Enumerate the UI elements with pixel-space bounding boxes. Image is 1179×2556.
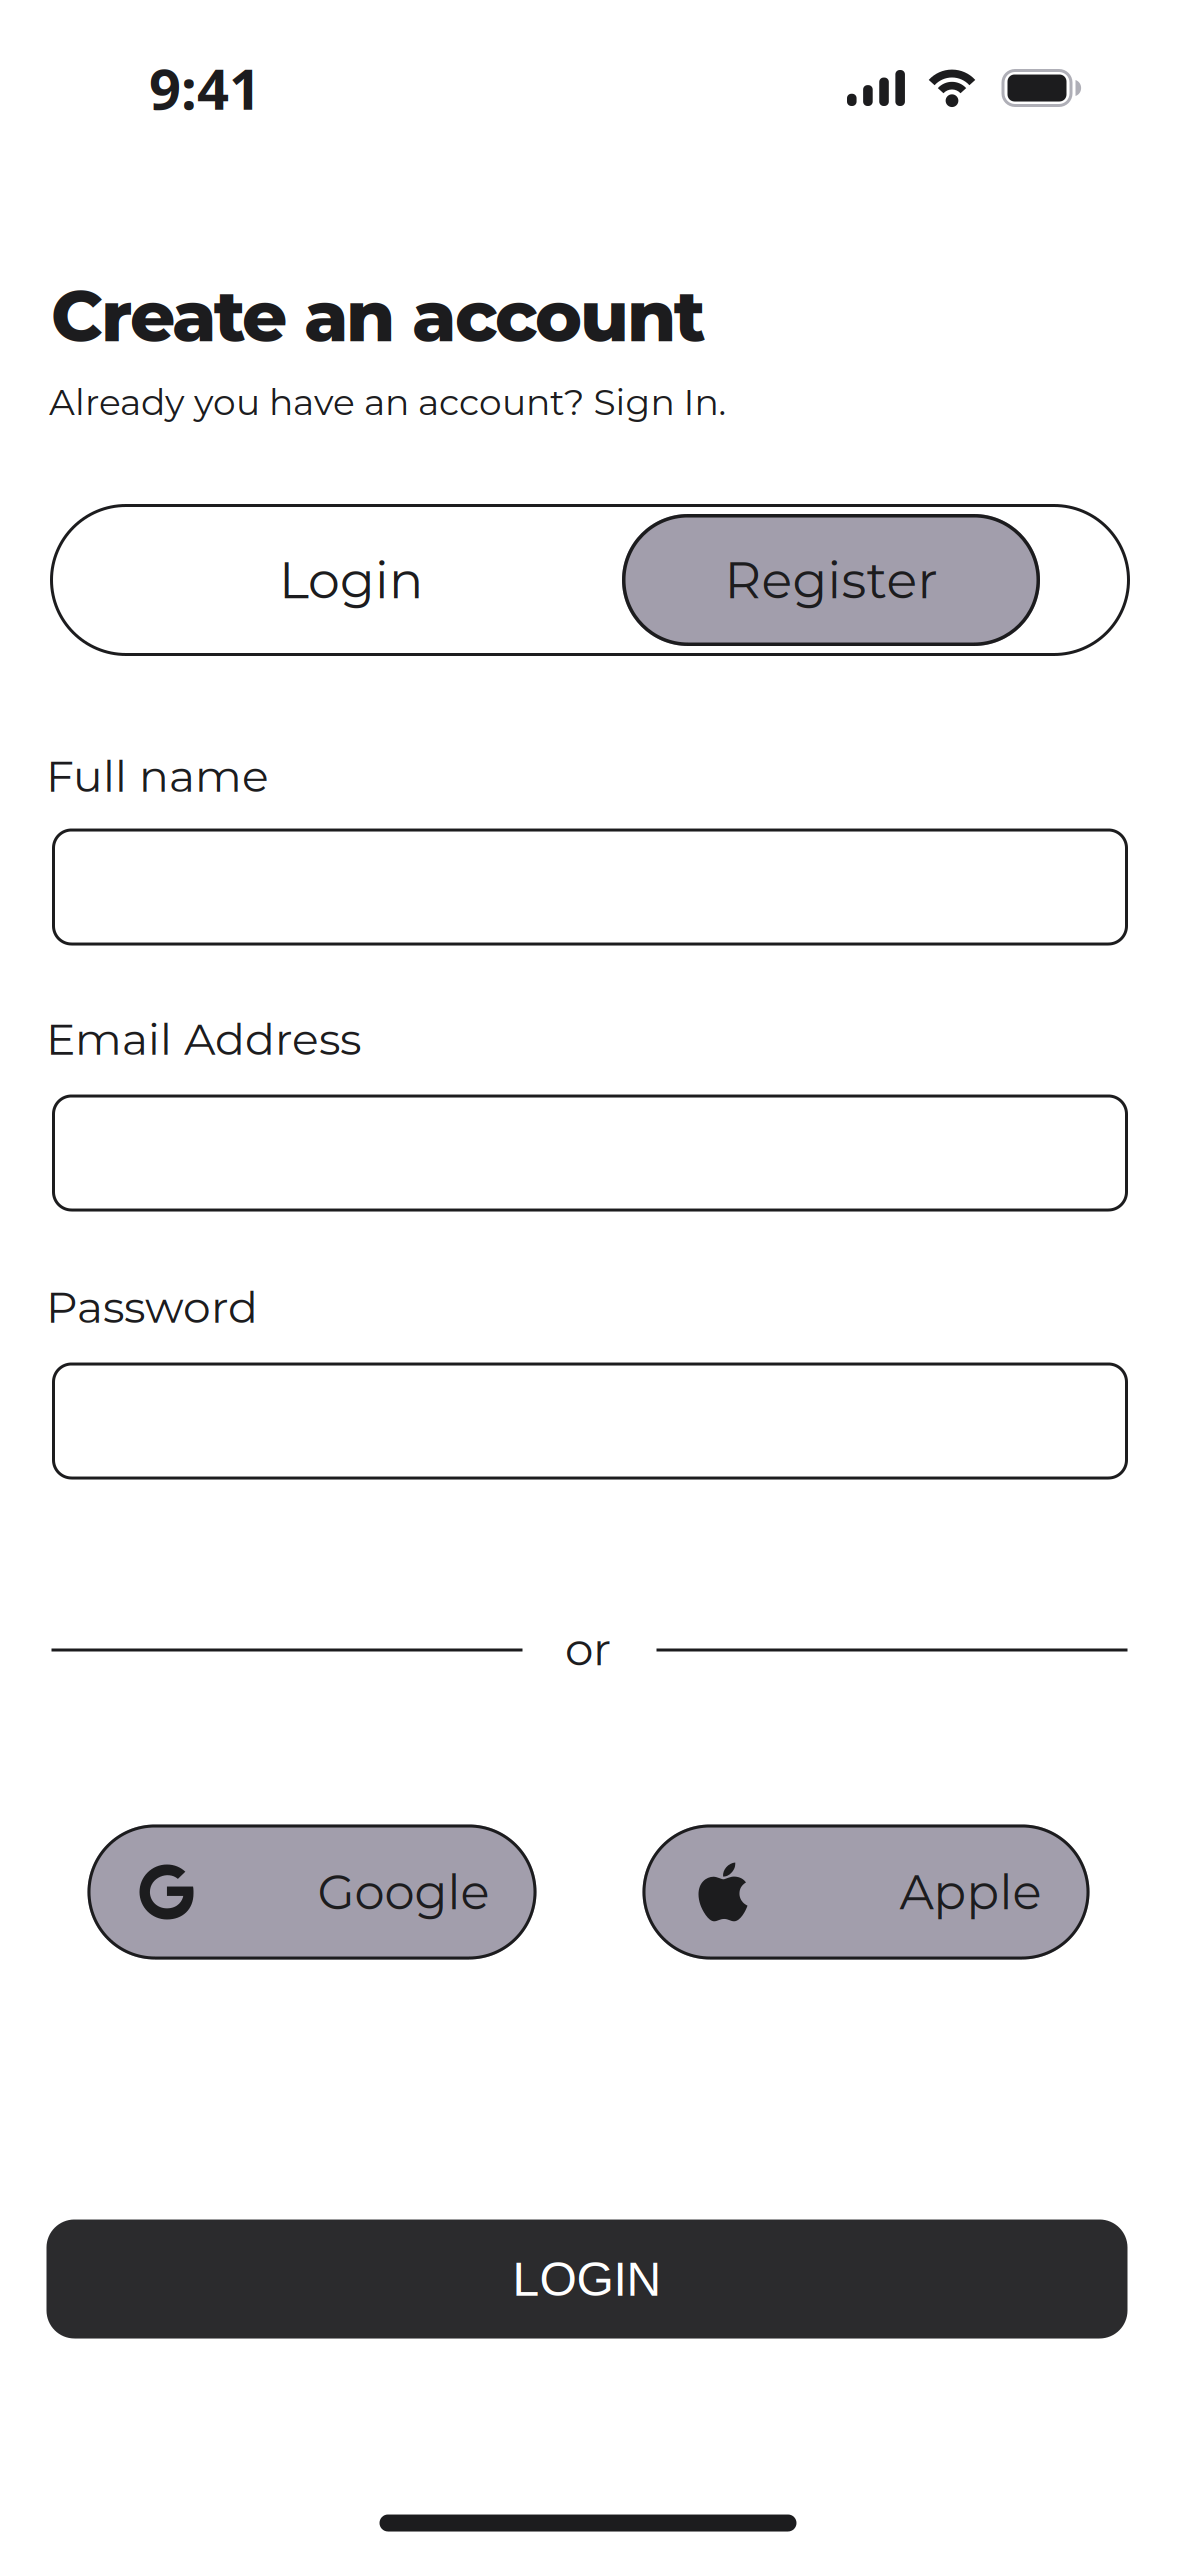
staticText: Email Address [46,1012,361,1066]
staticText: Google [317,1863,489,1921]
button[interactable]: Apple [642,1824,1089,1959]
button[interactable]: Register [622,514,1040,646]
staticText: Already you have an account? [49,380,584,424]
staticText: Full name [46,749,269,803]
staticText: LOGIN [512,2252,661,2306]
staticText: Sign In. [593,380,726,424]
button[interactable]: Google [87,1824,536,1959]
staticText: Apple [899,1863,1041,1921]
button[interactable]: Login [50,504,622,656]
button[interactable]: LOGIN [46,2219,1127,2338]
button[interactable]: Email Address [52,1094,1128,1211]
button[interactable]: Sign In. [593,380,726,424]
staticText: Create an account [51,273,706,359]
staticText: 9:41 [149,51,261,125]
button[interactable]: Password [52,1362,1128,1479]
button[interactable]: Full name [52,828,1128,945]
staticText: Login [279,549,423,611]
staticText: Register [724,549,937,611]
staticText: Password [46,1280,258,1334]
staticText: or [565,1621,611,1677]
